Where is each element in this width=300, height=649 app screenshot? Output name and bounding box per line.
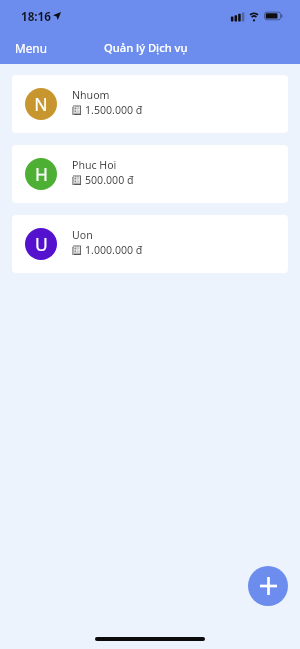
- staticText: Menu: [15, 40, 47, 56]
- staticText: H: [35, 162, 48, 186]
- button[interactable]: Add service: [248, 566, 288, 606]
- button[interactable]: Menu: [8, 37, 54, 59]
- staticText: 18:16: [21, 9, 51, 25]
- staticText: 1.000.000 đ: [85, 243, 143, 257]
- button[interactable]: N: [12, 75, 288, 133]
- staticText: Nhuom: [72, 88, 110, 102]
- other: Signal, wifi and battery status: [230, 12, 283, 22]
- staticText: N: [34, 92, 48, 116]
- staticText: Phuc Hoi: [72, 158, 117, 172]
- staticText: 1.500.000 đ: [85, 103, 143, 117]
- button[interactable]: U: [12, 215, 288, 273]
- staticText: U: [35, 232, 48, 256]
- staticText: 500.000 đ: [85, 173, 134, 187]
- staticText: Uon: [72, 228, 93, 242]
- staticText: Quản lý Dịch vụ: [104, 40, 188, 55]
- button[interactable]: H: [12, 145, 288, 203]
